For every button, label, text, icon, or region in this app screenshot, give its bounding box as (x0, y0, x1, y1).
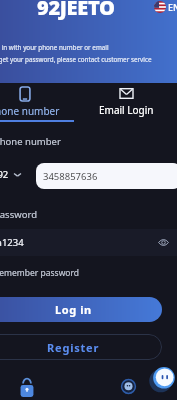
button[interactable]: Language EN (154, 1, 177, 13)
staticText: Phone number (0, 135, 61, 148)
staticText: +92 (0, 168, 9, 181)
button[interactable]: Live chat (152, 367, 175, 390)
staticText: Remember password (0, 267, 80, 279)
staticText: Log in with your phone number or email (0, 43, 109, 52)
button[interactable]: Email Login (76, 87, 177, 117)
staticText: 3458857636 (43, 170, 98, 183)
button[interactable]: Phone number (0, 87, 75, 118)
staticText: 92JEETO (37, 0, 115, 21)
button[interactable]: 3458857636 (36, 163, 177, 189)
button[interactable]: Ja1234 (0, 229, 177, 256)
button[interactable]: Register (0, 334, 162, 360)
staticText: Ja1234 (0, 236, 24, 249)
staticText: Phone number (0, 104, 60, 118)
button[interactable]: Log in (0, 297, 162, 322)
staticText: Log in (55, 302, 92, 317)
staticText: Register (47, 340, 100, 355)
button[interactable]: +92 (0, 168, 22, 181)
button[interactable]: Show password (158, 237, 169, 248)
staticText: Email Login (99, 103, 154, 117)
staticText: Password (0, 208, 37, 221)
button[interactable]: Customer support (121, 379, 136, 394)
staticText: Forget your password, please contact cus… (0, 55, 152, 64)
staticText: EN (168, 1, 177, 13)
button[interactable]: Secure login (20, 378, 34, 398)
